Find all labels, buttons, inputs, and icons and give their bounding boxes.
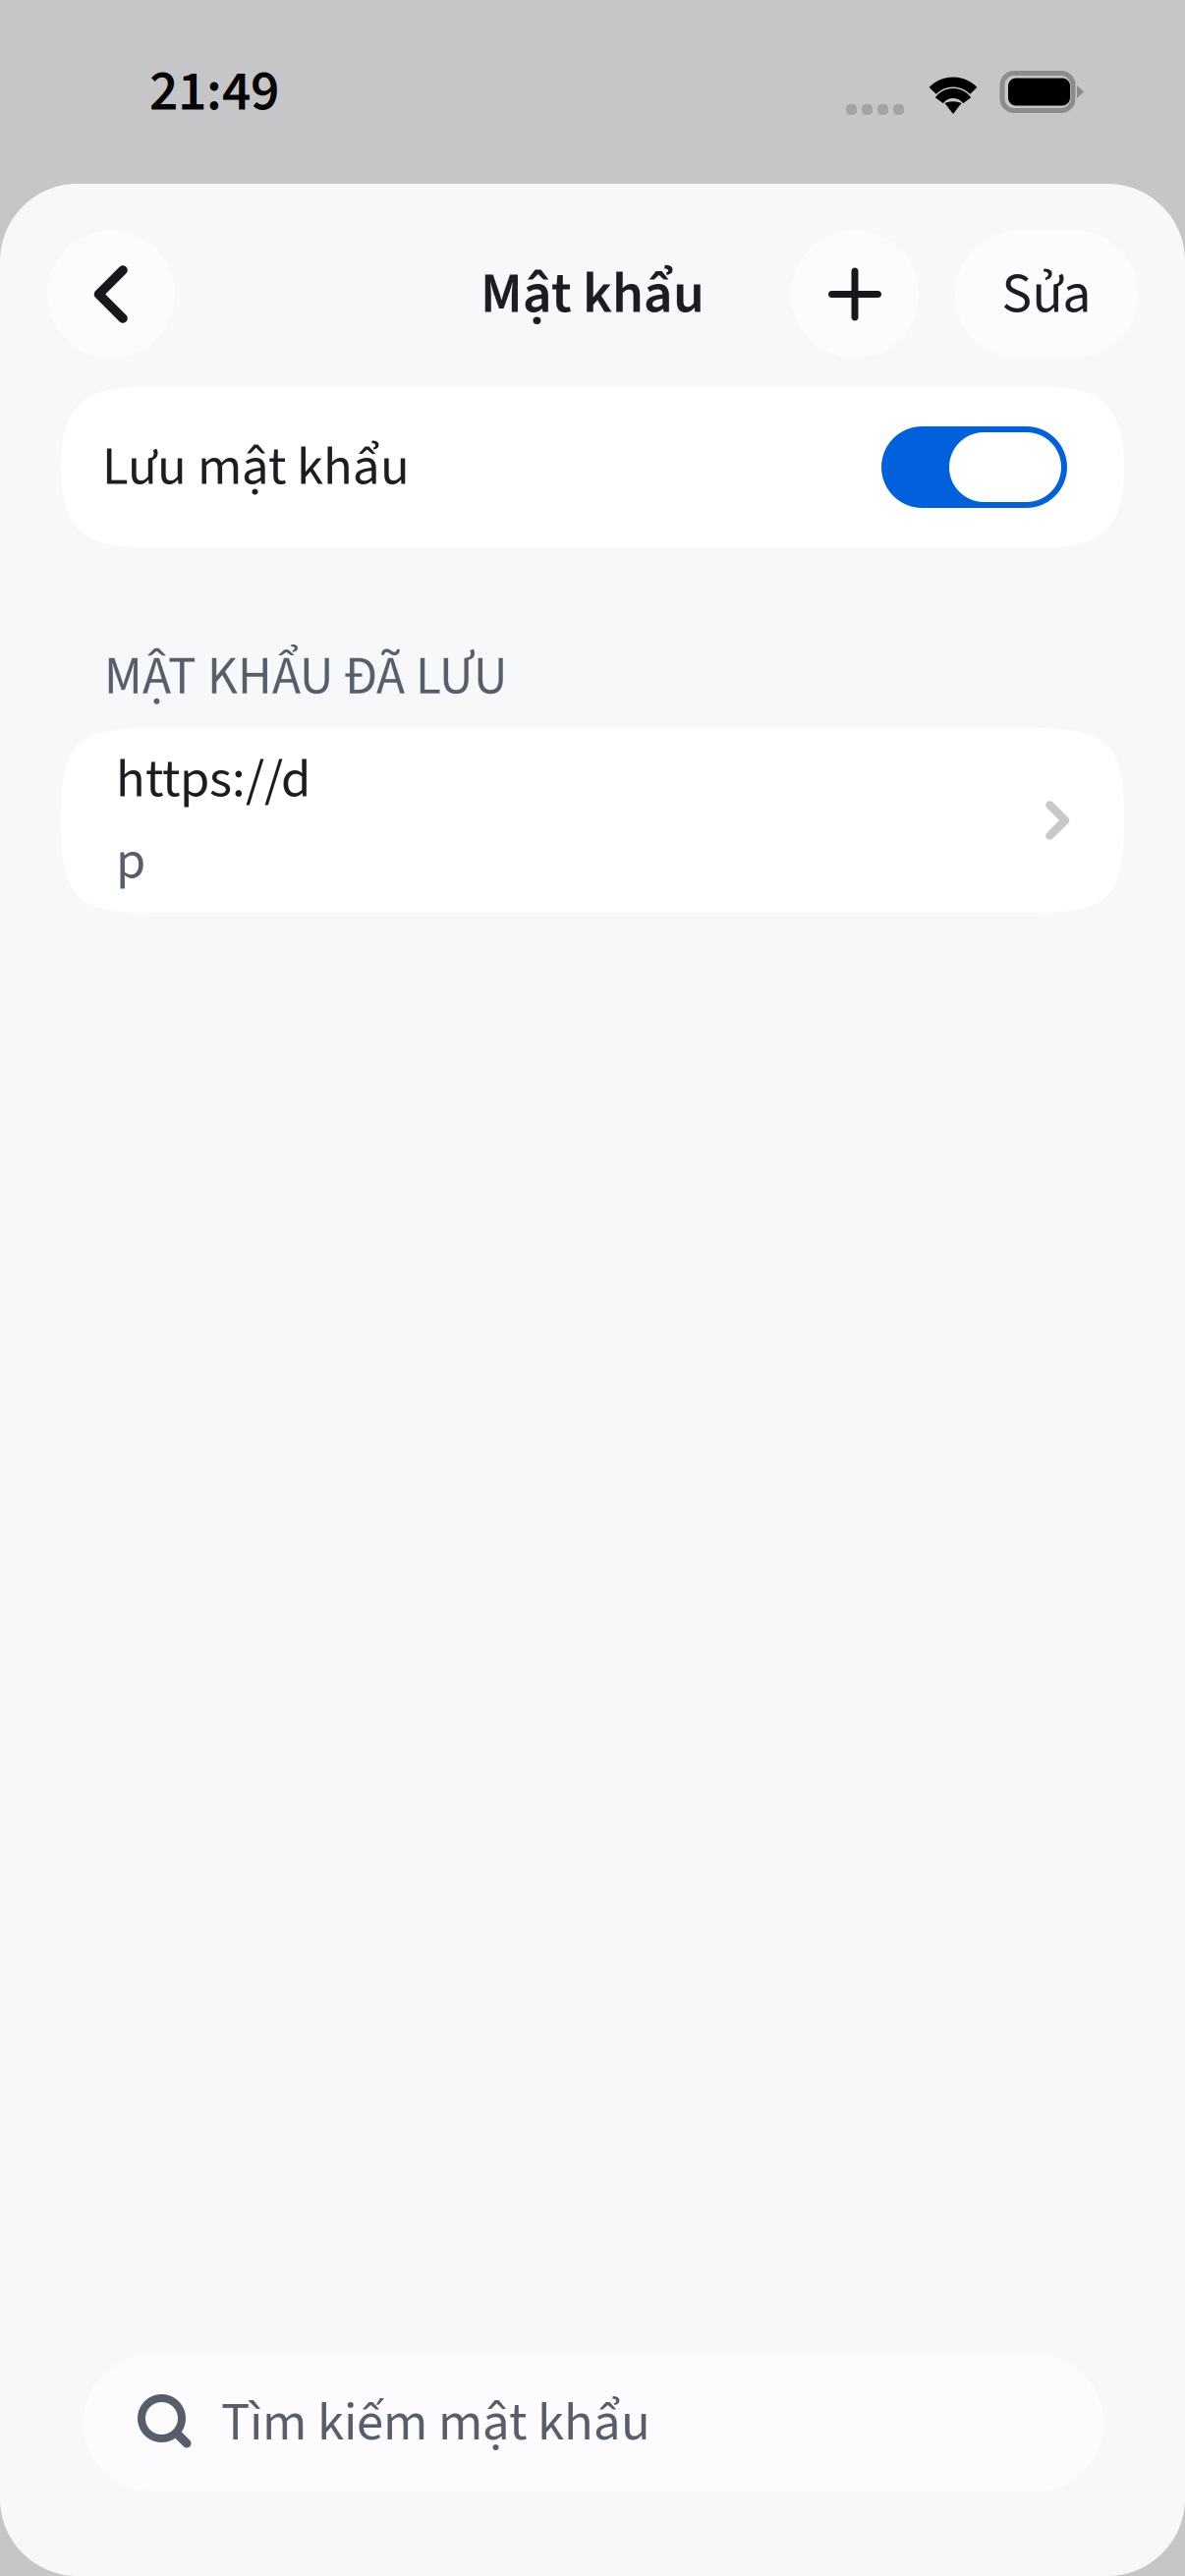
button[interactable]: Sửa bbox=[955, 230, 1138, 358]
staticText: Tìm kiếm mật khẩu bbox=[221, 2385, 650, 2461]
staticText: Lưu mật khẩu bbox=[102, 429, 410, 505]
staticText: MẬT KHẨU ĐÃ LƯU bbox=[104, 640, 507, 714]
button[interactable]: https://d bbox=[61, 728, 1124, 913]
button[interactable]: Lưu mật khẩu bbox=[61, 387, 1124, 547]
button[interactable]: Add password bbox=[791, 230, 919, 358]
button[interactable]: Tìm kiếm mật khẩu bbox=[84, 2354, 1103, 2492]
staticText: https://d bbox=[116, 741, 310, 818]
button[interactable]: Back bbox=[47, 230, 175, 358]
staticText: 21:49 bbox=[149, 52, 279, 132]
staticText: p bbox=[116, 823, 145, 899]
staticText: Sửa bbox=[1002, 254, 1091, 334]
staticText: Mật khẩu bbox=[480, 254, 705, 334]
